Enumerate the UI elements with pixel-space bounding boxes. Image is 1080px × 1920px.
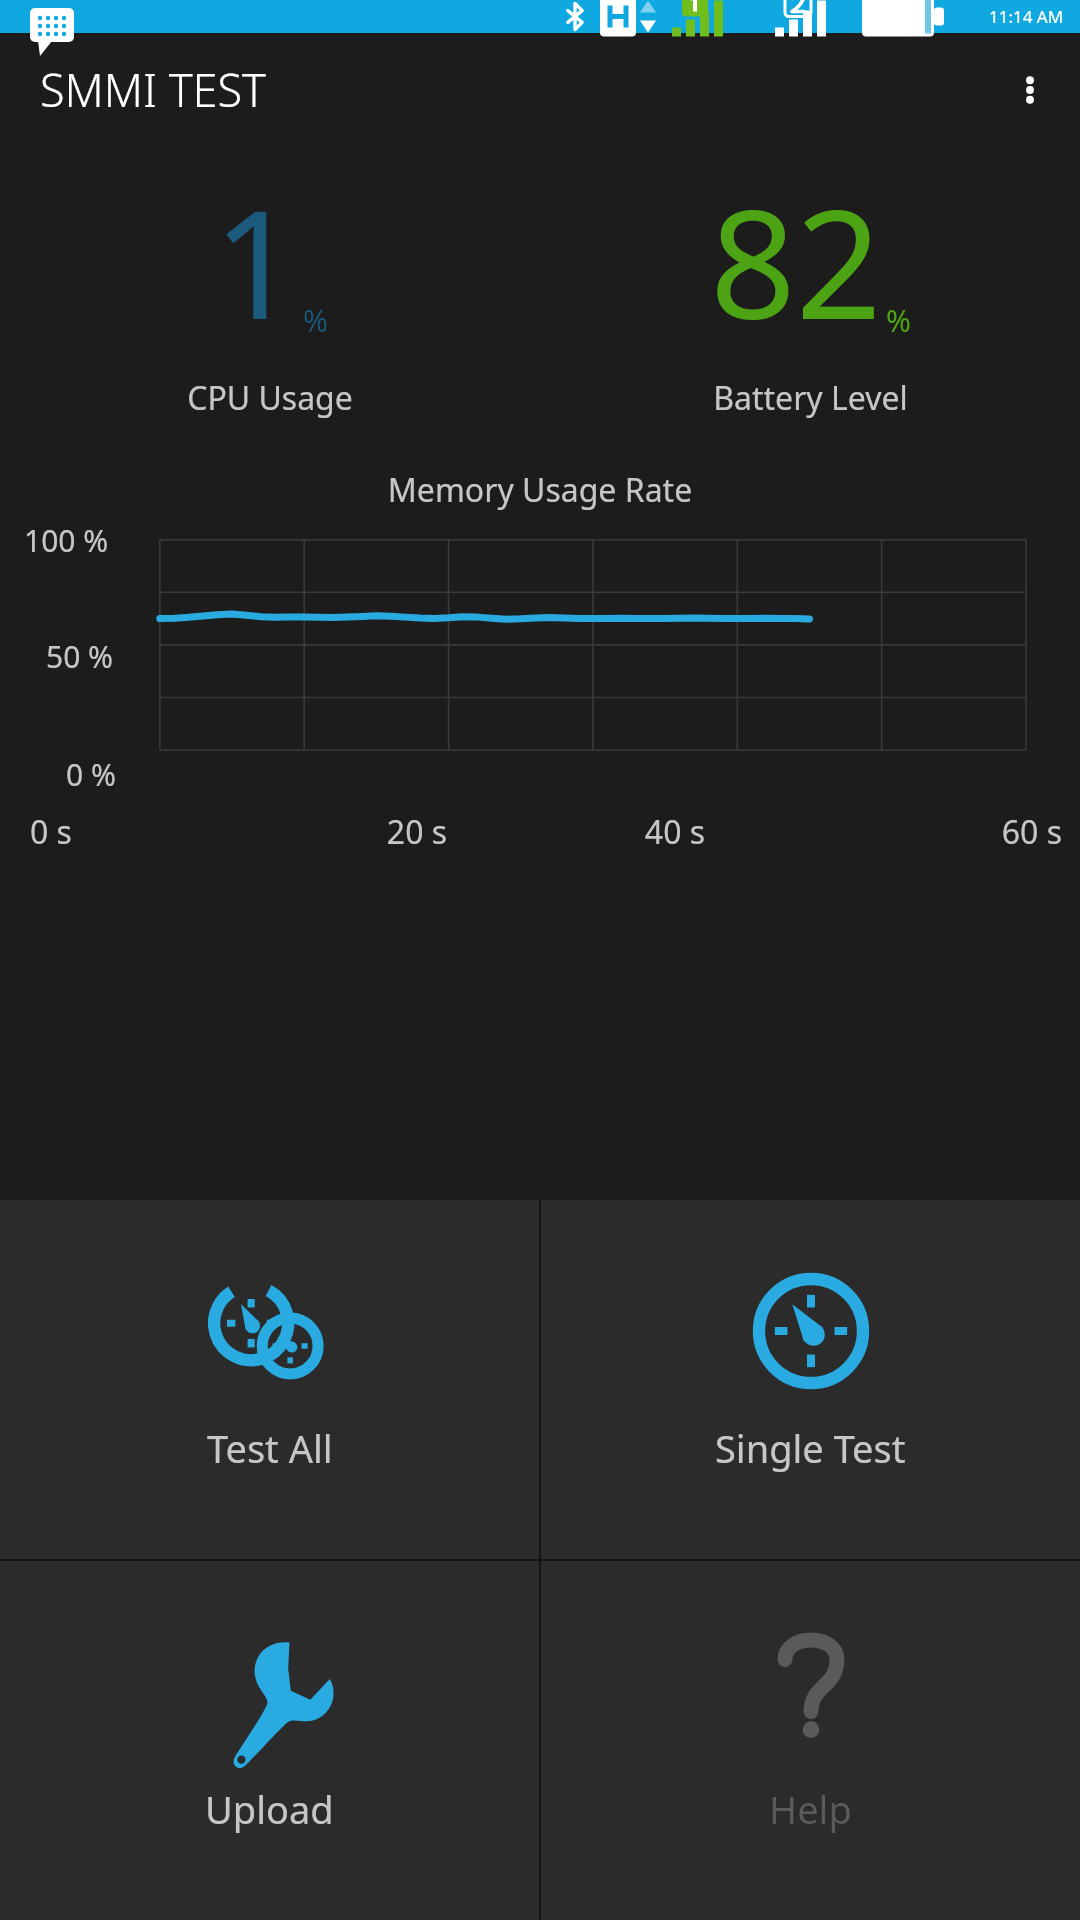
staticText: % (303, 300, 328, 341)
staticText: 40 s (546, 810, 804, 854)
staticText: Battery Level (713, 376, 908, 420)
staticText: 60 s (804, 810, 1062, 854)
button[interactable]: Help (541, 1561, 1080, 1920)
staticText: Help (769, 1783, 852, 1835)
staticText: 11:14 AM (989, 5, 1064, 28)
staticText: Test All (207, 1422, 333, 1474)
button[interactable]: Single Test (541, 1200, 1080, 1559)
staticText: 50 % (46, 636, 114, 677)
button[interactable]: Test All (0, 1200, 539, 1559)
staticText: 82 (710, 159, 882, 363)
button[interactable]: More options (994, 54, 1066, 126)
staticText: 0 s (30, 810, 288, 854)
button[interactable]: Upload (0, 1561, 539, 1920)
staticText: CPU Usage (187, 376, 353, 420)
staticText: 0 % (66, 754, 116, 795)
staticText: Upload (205, 1783, 334, 1835)
staticText: Single Test (715, 1422, 906, 1474)
staticText: 100 % (24, 520, 109, 561)
staticText: 20 s (288, 810, 546, 854)
staticText: Memory Usage Rate (0, 468, 1080, 512)
staticText: 1 (213, 159, 299, 363)
staticText: % (886, 300, 911, 341)
staticText: SMMI TEST (40, 59, 266, 120)
